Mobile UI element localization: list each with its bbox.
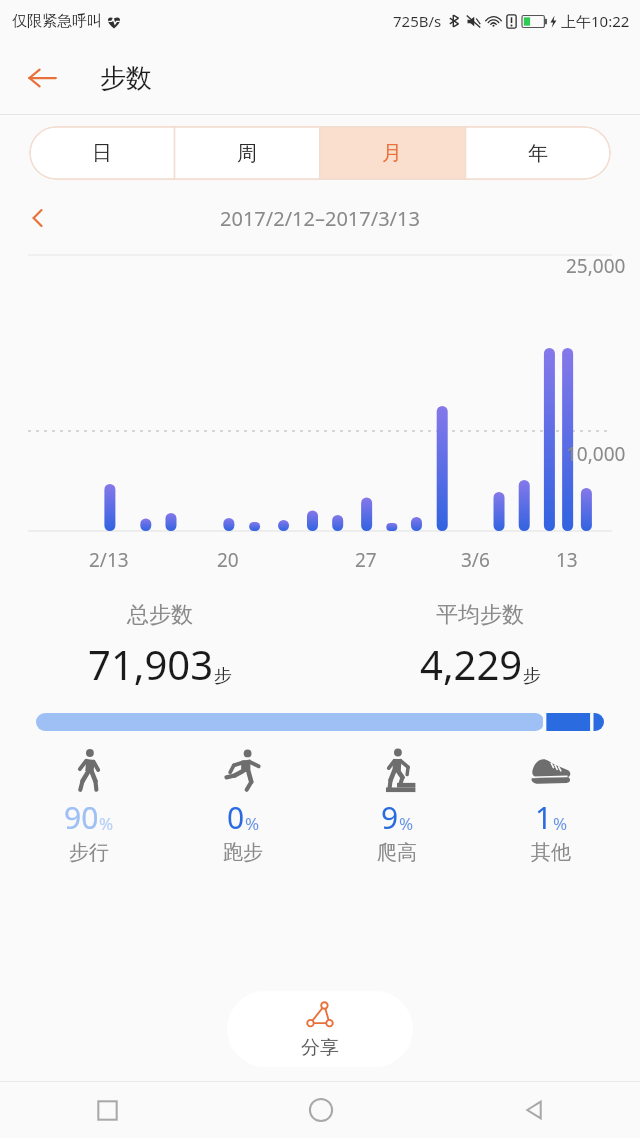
staticText: 步 — [523, 665, 541, 688]
staticText: 4,229 — [420, 637, 523, 691]
staticText: 10,000 — [566, 441, 626, 467]
staticText: 平均步数 — [436, 601, 524, 629]
staticText: 3/6 — [461, 547, 490, 573]
staticText: 725B/s — [393, 11, 442, 31]
staticText: 总步数 — [127, 601, 193, 629]
staticText: 其他 — [531, 840, 571, 865]
button[interactable]: 分享 — [227, 991, 413, 1067]
button[interactable]: 周 — [174, 126, 319, 180]
staticText: 2017/2/12–2017/3/13 — [220, 205, 420, 232]
staticText: 周 — [237, 141, 257, 166]
button[interactable]: 步行 — [12, 747, 166, 865]
staticText: 0 — [227, 797, 245, 838]
staticText: 步数 — [100, 62, 152, 95]
staticText: 年 — [528, 141, 548, 166]
staticText: 90 — [64, 797, 99, 838]
staticText: 9 — [381, 797, 399, 838]
button[interactable]: 返回 — [18, 54, 66, 102]
button[interactable]: 爬高 — [320, 747, 474, 865]
staticText: 跑步 — [223, 840, 263, 865]
staticText: 步 — [214, 665, 232, 688]
staticText: 月 — [382, 141, 402, 166]
staticText: 分享 — [301, 1036, 339, 1060]
button[interactable]: 日 — [29, 126, 174, 180]
staticText: % — [553, 812, 568, 835]
staticText: 25,000 — [566, 253, 626, 279]
staticText: % — [245, 812, 260, 835]
staticText: 27 — [355, 547, 377, 573]
button[interactable]: 返回 — [427, 1082, 640, 1138]
button[interactable]: 年 — [465, 126, 611, 180]
staticText: 13 — [556, 547, 578, 573]
staticText: 爬高 — [377, 840, 417, 865]
staticText: 71,903 — [88, 637, 214, 691]
other: 其他 — [528, 747, 574, 793]
staticText: 步行 — [69, 840, 109, 865]
other: 跑步 — [220, 747, 266, 793]
staticText: 仅限紧急呼叫 — [12, 12, 102, 31]
staticText: 1 — [535, 797, 553, 838]
staticText: % — [399, 812, 414, 835]
staticText: 2/13 — [89, 547, 129, 573]
staticText: % — [99, 812, 114, 835]
staticText: 20 — [217, 547, 239, 573]
other: 爬高 — [374, 747, 420, 793]
button[interactable]: 主屏幕 — [214, 1082, 427, 1138]
staticText: 上午10:22 — [561, 11, 630, 31]
button[interactable]: 月 — [319, 126, 465, 180]
other: 步行 — [66, 747, 112, 793]
button[interactable]: 最近任务 — [0, 1082, 214, 1138]
staticText: 日 — [92, 141, 112, 166]
button[interactable]: 上一个月 — [16, 196, 60, 240]
button[interactable]: 跑步 — [166, 747, 320, 865]
button[interactable]: 其他 — [474, 747, 628, 865]
